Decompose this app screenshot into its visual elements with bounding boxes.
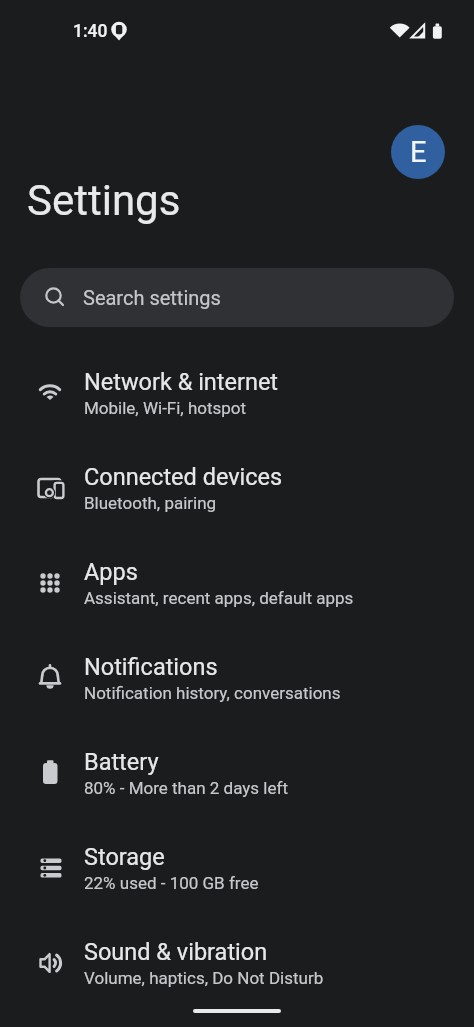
staticText: Notification history, conversations (84, 683, 341, 703)
staticText: Bluetooth, pairing (84, 493, 217, 513)
button[interactable]: Notifications (0, 630, 474, 725)
button[interactable]: Storage (0, 820, 474, 915)
staticText: Network & internet (84, 368, 279, 396)
staticText: Assistant, recent apps, default apps (84, 588, 354, 608)
staticText: E (410, 135, 427, 169)
staticText: Connected devices (84, 463, 283, 491)
staticText: Notifications (84, 653, 218, 681)
staticText: Storage (84, 843, 165, 871)
staticText: Apps (84, 558, 138, 586)
staticText: 1:40 (73, 21, 108, 42)
staticText: Sound & vibration (84, 938, 268, 966)
button[interactable]: Search settings (20, 268, 454, 327)
staticText: 80% - More than 2 days left (84, 778, 288, 798)
button[interactable]: Network & internet (0, 345, 474, 440)
button[interactable]: Sound & vibration (0, 915, 474, 1010)
staticText: Search settings (83, 286, 221, 309)
staticText: 22% used - 100 GB free (84, 873, 259, 893)
staticText: Settings (27, 176, 181, 225)
button[interactable]: Connected devices (0, 440, 474, 535)
staticText: Battery (84, 748, 159, 776)
button[interactable]: E (391, 125, 445, 179)
staticText: Mobile, Wi-Fi, hotspot (84, 398, 247, 418)
button[interactable]: Battery (0, 725, 474, 820)
staticText: Volume, haptics, Do Not Disturb (84, 968, 324, 988)
button[interactable]: Apps (0, 535, 474, 630)
